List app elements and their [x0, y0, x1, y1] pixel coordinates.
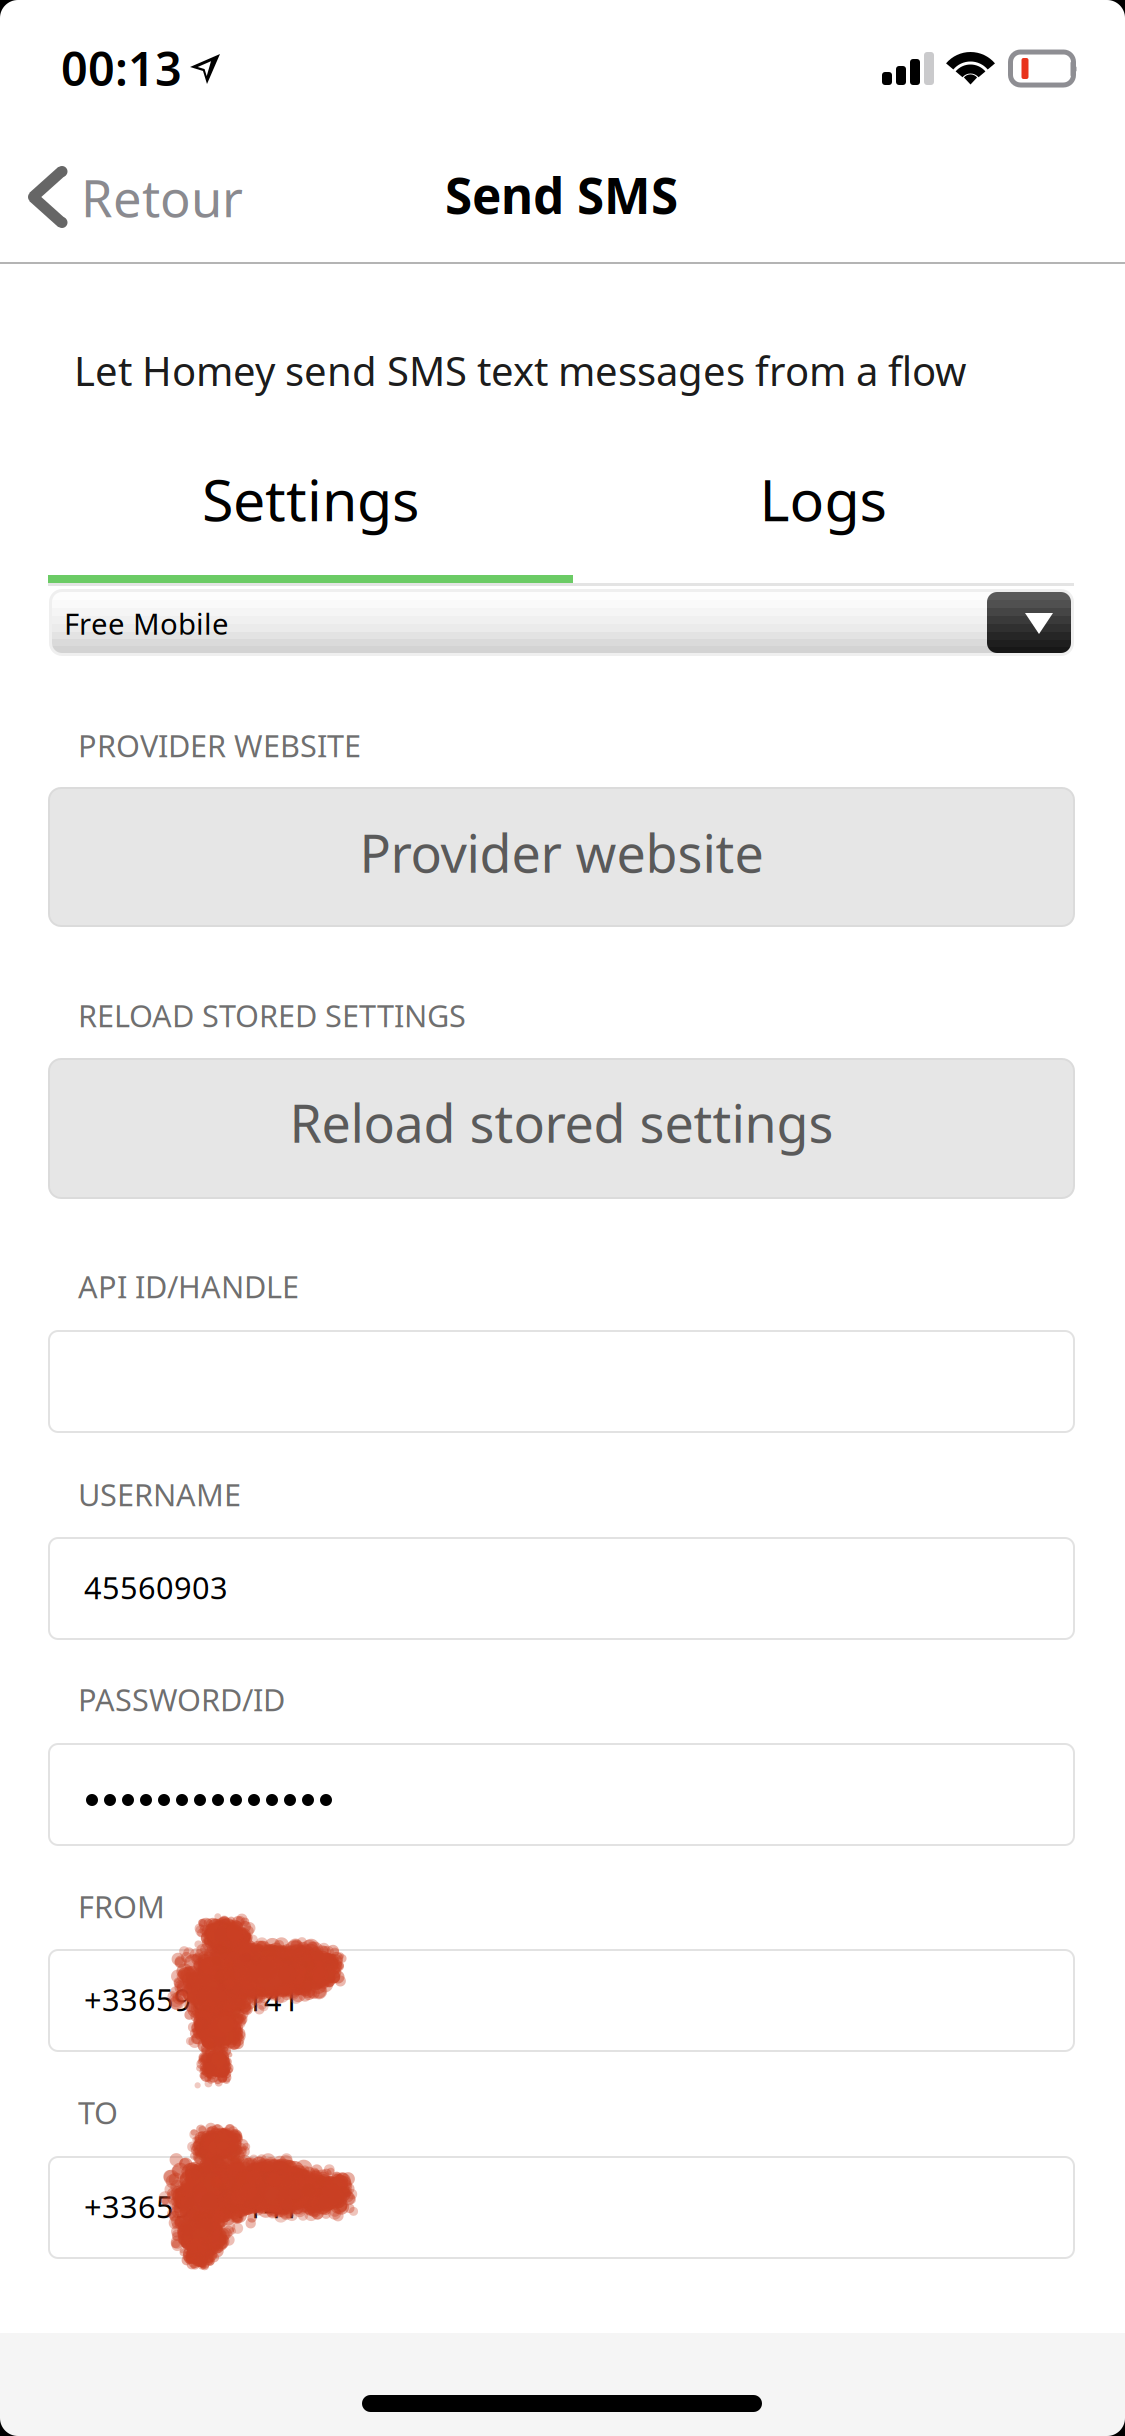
staticText: PROVIDER WEBSITE: [78, 725, 361, 766]
staticText: Settings: [202, 461, 419, 537]
staticText: TO: [78, 2092, 118, 2133]
button[interactable]: Reload stored settings: [49, 1059, 1074, 1198]
staticText: RELOAD STORED SETTINGS: [78, 995, 466, 1036]
button[interactable]: To: [49, 2157, 1074, 2258]
staticText: Provider website: [359, 818, 763, 887]
staticText: Logs: [759, 461, 886, 537]
button[interactable]: Logs: [573, 445, 1073, 553]
button[interactable]: Username: [49, 1538, 1074, 1639]
staticText: PASSWORD/ID: [78, 1679, 285, 1720]
staticText: +33659004141: [84, 1979, 300, 2020]
staticText: 45560903: [84, 1567, 228, 1608]
button[interactable]: Password/ID: [49, 1744, 1074, 1845]
staticText: USERNAME: [78, 1474, 241, 1515]
button[interactable]: API ID/Handle: [49, 1331, 1074, 1432]
staticText: API ID/HANDLE: [78, 1266, 299, 1307]
staticText: FROM: [78, 1886, 165, 1927]
button[interactable]: Provider: Free Mobile: [49, 589, 1074, 656]
button[interactable]: Settings: [48, 445, 573, 553]
staticText: Reload stored settings: [289, 1088, 833, 1157]
button[interactable]: Retour: [28, 141, 278, 253]
staticText: Send SMS: [445, 162, 678, 227]
button[interactable]: From: [49, 1950, 1074, 2051]
staticText: 00:13: [61, 37, 182, 99]
staticText: Free Mobile: [64, 604, 229, 643]
button[interactable]: Provider website: [49, 788, 1074, 926]
staticText: Retour: [81, 164, 243, 231]
staticText: Let Homey send SMS text messages from a …: [74, 344, 966, 397]
staticText: +33659004141: [84, 2186, 300, 2227]
